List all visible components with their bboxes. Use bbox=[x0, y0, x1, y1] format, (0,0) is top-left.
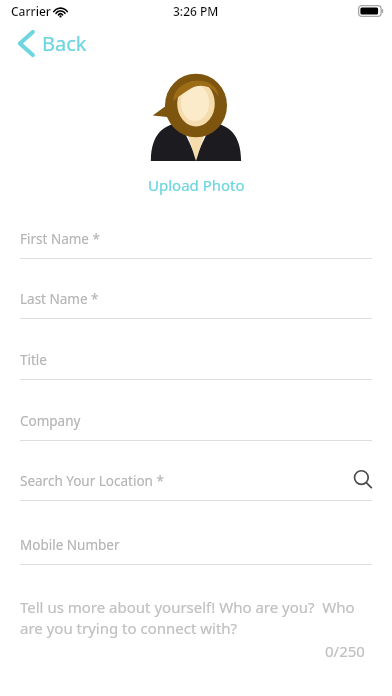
staticText: First Name * bbox=[20, 230, 100, 248]
button[interactable]: Last Name * bbox=[20, 280, 372, 319]
staticText: Last Name * bbox=[20, 290, 99, 308]
button[interactable]: Mobile Number bbox=[20, 526, 372, 565]
staticText: Tell us more about yourself! Who are you… bbox=[20, 597, 372, 639]
staticText: Search Your Location * bbox=[20, 472, 164, 490]
button[interactable]: Tell us more about yourself! Who are you… bbox=[20, 597, 372, 655]
button[interactable]: Upload Photo bbox=[140, 172, 253, 198]
staticText: Title bbox=[20, 351, 47, 369]
button[interactable]: Profile photo bbox=[149, 70, 243, 161]
staticText: Mobile Number bbox=[20, 536, 120, 554]
button[interactable]: Title bbox=[20, 341, 372, 380]
button[interactable]: First Name * bbox=[20, 220, 372, 259]
button[interactable]: Company bbox=[20, 402, 372, 441]
staticText: Upload Photo bbox=[148, 175, 245, 195]
button[interactable]: Search Your Location * bbox=[20, 462, 372, 501]
staticText: 3:26 PM bbox=[173, 3, 219, 19]
staticText: Company bbox=[20, 412, 81, 430]
other: Search bbox=[353, 470, 372, 489]
staticText: Carrier bbox=[11, 3, 51, 19]
staticText: Back bbox=[42, 30, 87, 57]
button[interactable]: Back bbox=[10, 24, 110, 62]
staticText: 0/250 bbox=[325, 641, 365, 661]
